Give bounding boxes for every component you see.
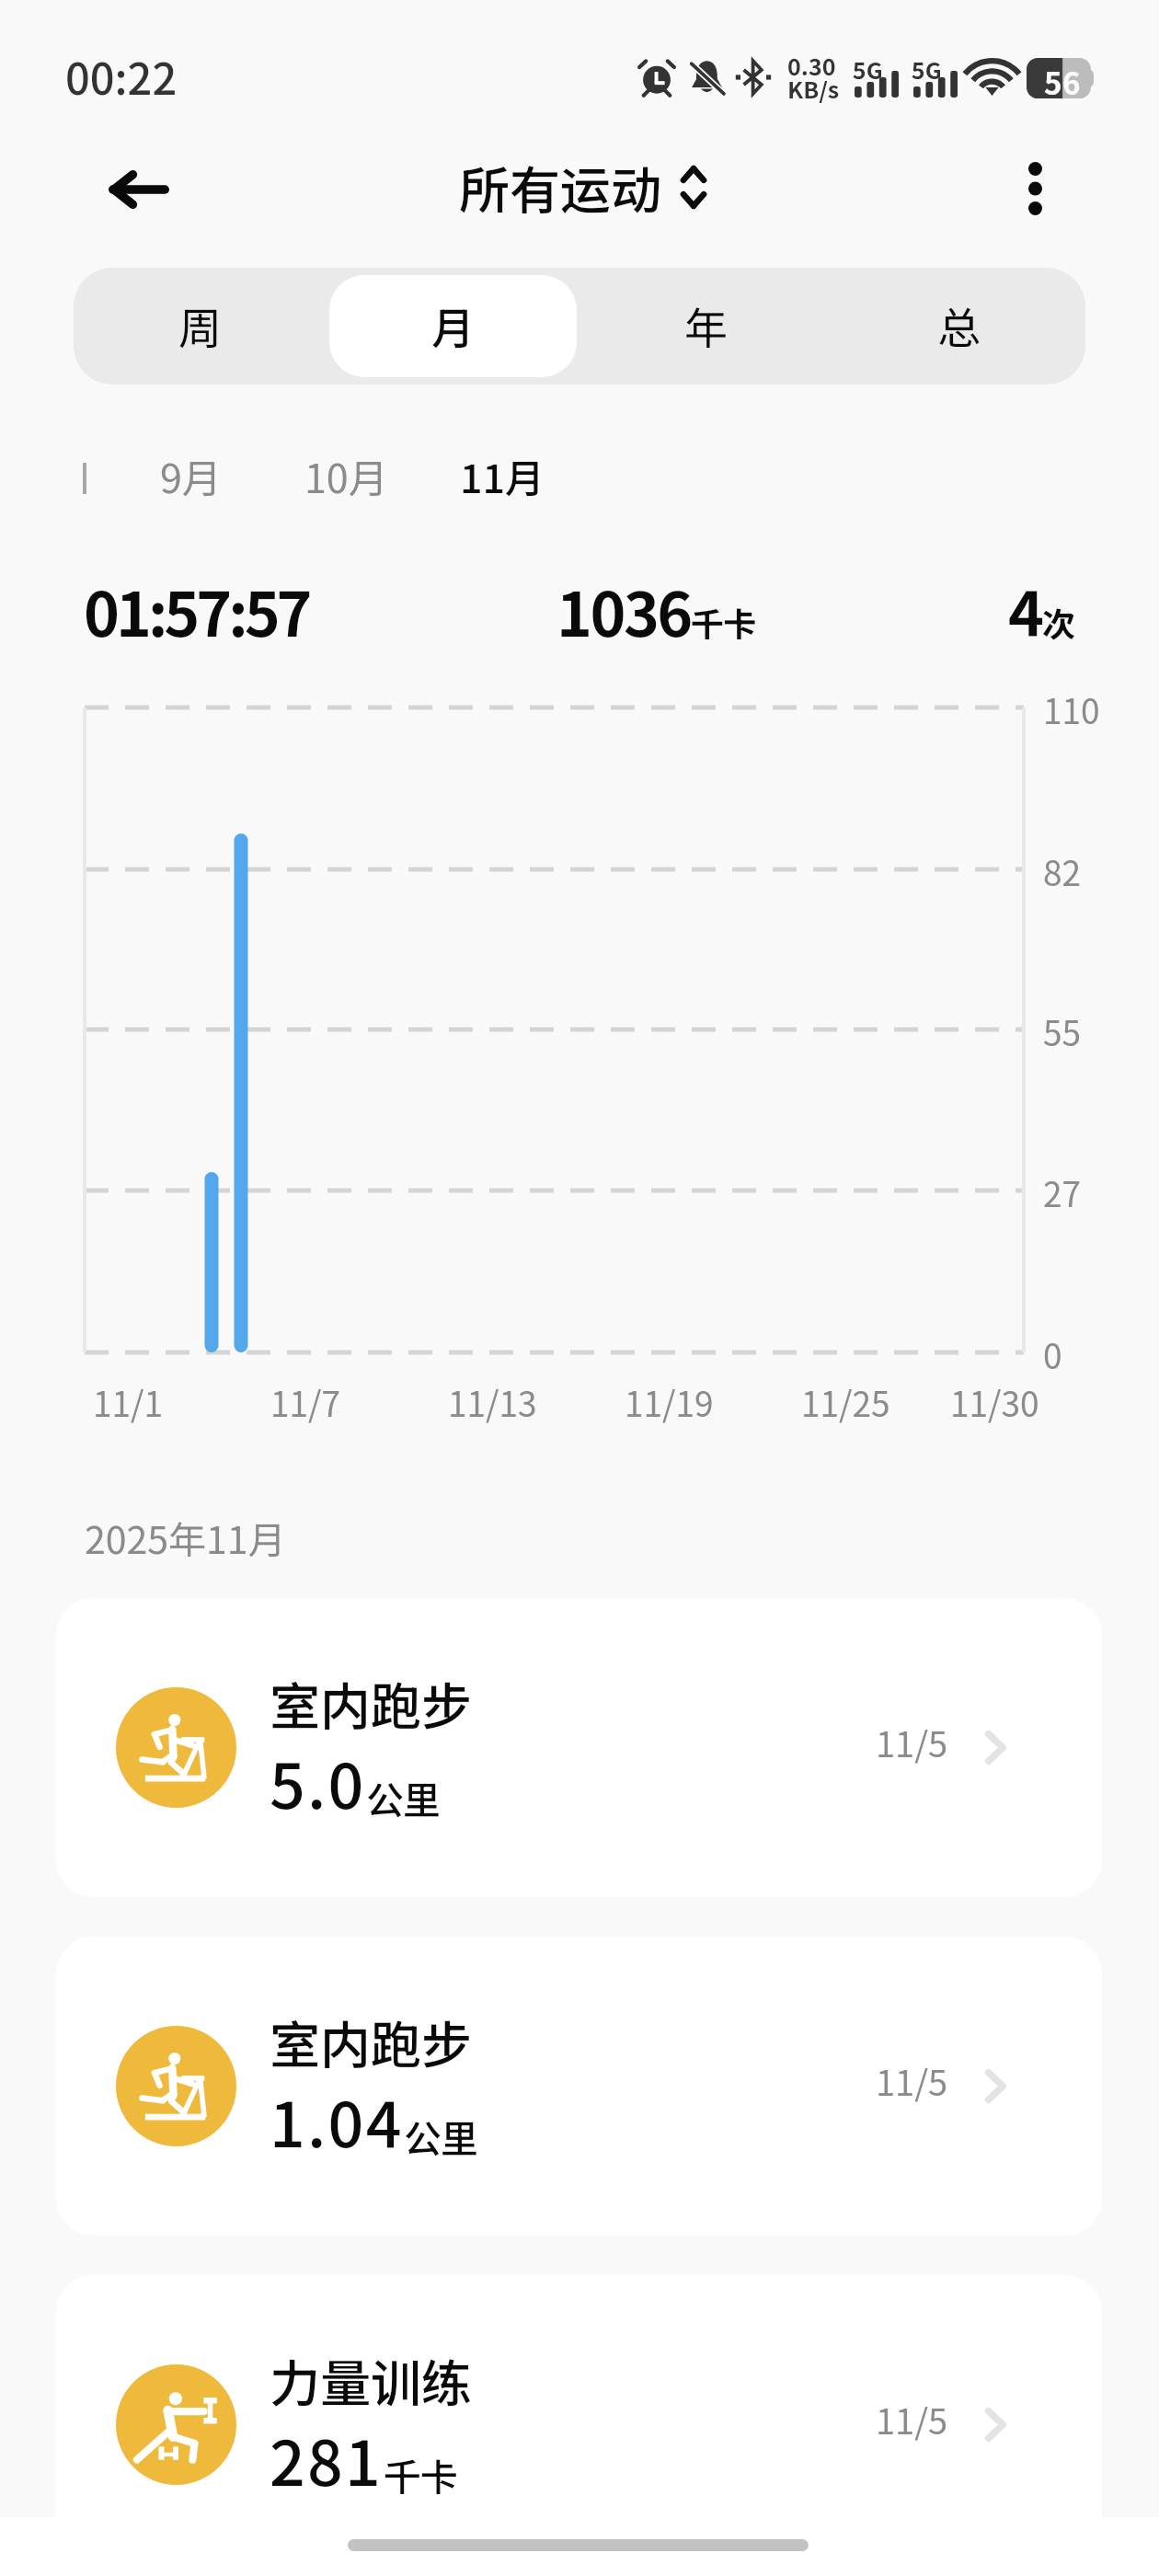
- staticText: 总: [937, 293, 981, 356]
- button[interactable]: 周: [76, 275, 324, 377]
- staticText: 1.04: [270, 2075, 404, 2165]
- staticText: 5G: [853, 52, 883, 86]
- staticText: 0.30 KB/s: [787, 49, 840, 105]
- staticText: 所有运动: [459, 150, 662, 224]
- staticText: 5G: [912, 52, 942, 86]
- staticText: 110: [1043, 684, 1100, 734]
- staticText: 公里: [366, 1770, 440, 1824]
- staticText: 11/30: [950, 1377, 1039, 1427]
- staticText: 27: [1043, 1167, 1082, 1217]
- staticText: 6: [1062, 60, 1081, 100]
- staticText: 2025年11月: [85, 1510, 286, 1564]
- staticText: 4: [1008, 566, 1042, 654]
- button[interactable]: 年: [582, 275, 830, 377]
- staticText: 年: [684, 293, 728, 356]
- staticText: 次: [1042, 598, 1076, 646]
- button[interactable]: 月: [329, 275, 577, 377]
- staticText: 5.0: [270, 1736, 366, 1826]
- staticText: 9月: [160, 447, 222, 504]
- staticText: 00:22: [65, 44, 178, 107]
- staticText: 11月: [460, 447, 545, 504]
- button[interactable]: 所有运动: [459, 150, 707, 224]
- staticText: 室内跑步: [270, 1666, 473, 1740]
- staticText: 月: [431, 293, 475, 356]
- staticText: 千卡: [384, 2447, 457, 2501]
- staticText: 室内跑步: [270, 2005, 473, 2078]
- button[interactable]: Back: [97, 147, 181, 232]
- staticText: 01:57:57: [84, 566, 309, 654]
- staticText: 11/13: [448, 1377, 537, 1427]
- staticText: 11/1: [93, 1377, 164, 1427]
- staticText: 公里: [404, 2109, 477, 2163]
- staticText: 11/7: [270, 1377, 341, 1427]
- staticText: 11/5: [876, 1717, 948, 1767]
- staticText: 55: [1043, 1006, 1082, 1056]
- staticText: 1036: [557, 566, 691, 654]
- staticText: 10月: [304, 447, 388, 504]
- button[interactable]: 总: [835, 275, 1083, 377]
- button[interactable]: 力量训练: [56, 2275, 1102, 2574]
- staticText: 千卡: [691, 598, 756, 646]
- staticText: 281: [270, 2413, 384, 2503]
- staticText: 11/25: [801, 1377, 890, 1427]
- button[interactable]: 室内跑步: [56, 1598, 1102, 1897]
- staticText: 5: [1044, 60, 1062, 100]
- staticText: 11/19: [625, 1377, 714, 1427]
- staticText: 82: [1043, 846, 1082, 896]
- staticText: 11/5: [876, 2394, 948, 2444]
- button[interactable]: More options: [993, 147, 1076, 230]
- staticText: 0: [1043, 1329, 1062, 1379]
- staticText: 11/5: [876, 2055, 948, 2106]
- button[interactable]: 室内跑步: [56, 1937, 1102, 2236]
- staticText: 周: [178, 293, 222, 356]
- staticText: 力量训练: [270, 2343, 473, 2417]
